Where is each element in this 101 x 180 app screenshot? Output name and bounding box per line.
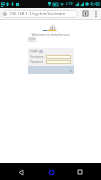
button[interactable]: Tabs	[80, 8, 91, 19]
staticText: 192.168.1.1/cgi-bin/luci/adm	[9, 11, 66, 17]
button[interactable]: English	[28, 37, 36, 42]
button[interactable]: 192.168.1.1/cgi-bin/luci/adm	[1, 10, 78, 18]
button[interactable]: Back	[13, 164, 29, 180]
button[interactable]: Home	[43, 164, 59, 180]
staticText: Welcome to detaService	[31, 32, 70, 37]
button[interactable]: More options	[91, 9, 101, 19]
staticText: LTE	[66, 1, 73, 7]
staticText: Username	[30, 55, 44, 59]
staticText: Password	[30, 60, 43, 64]
button[interactable]	[46, 55, 71, 59]
button[interactable]: Recents	[72, 164, 88, 180]
staticText: Login	[30, 49, 38, 53]
staticText: English	[28, 37, 36, 42]
button[interactable]	[46, 60, 71, 64]
staticText: 4:48	[90, 1, 100, 8]
